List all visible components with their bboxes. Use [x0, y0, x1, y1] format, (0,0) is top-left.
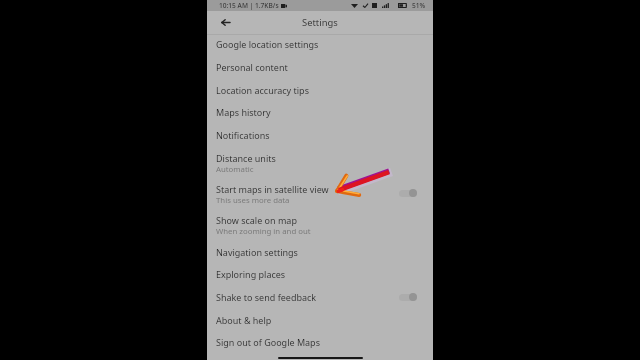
staticText: 51% [412, 1, 426, 10]
button[interactable]: Sign out of Google Maps [207, 330, 433, 353]
button[interactable]: About & help [207, 308, 433, 331]
staticText: About & help [216, 314, 272, 326]
button[interactable]: Notifications [207, 123, 433, 146]
staticText: This uses more data [216, 195, 290, 206]
staticText: Start maps in satellite view [216, 183, 329, 195]
button[interactable]: Show scale on map [207, 208, 433, 239]
button[interactable]: Google location settings [207, 32, 433, 55]
staticText: Location accuracy tips [216, 84, 309, 96]
staticText: Notifications [216, 129, 270, 141]
button[interactable]: Toggle [399, 186, 424, 200]
staticText: Distance units [216, 152, 276, 164]
button[interactable]: Start maps in satellite view [207, 177, 433, 208]
button[interactable]: Personal content [207, 55, 433, 78]
button[interactable]: Shake to send feedback [207, 285, 433, 308]
button[interactable]: Distance units [207, 146, 433, 177]
staticText: Personal content [216, 61, 288, 73]
button[interactable]: Exploring places [207, 262, 433, 285]
staticText: Show scale on map [216, 214, 297, 226]
button[interactable]: Maps history [207, 100, 433, 123]
staticText: Automatic [216, 164, 254, 175]
staticText: Google location settings [216, 38, 319, 50]
staticText: Navigation settings [216, 246, 298, 258]
staticText: Settings [302, 16, 338, 29]
staticText: 10:15 AM | 1.7KB/s [219, 1, 279, 10]
staticText: Sign out of Google Maps [216, 336, 320, 348]
staticText: Exploring places [216, 268, 286, 280]
staticText: When zooming in and out [216, 226, 311, 237]
button[interactable]: Back [216, 13, 234, 31]
staticText: Maps history [216, 106, 271, 118]
button[interactable]: Toggle [399, 290, 424, 304]
button[interactable]: Navigation settings [207, 240, 433, 263]
button[interactable]: Location accuracy tips [207, 78, 433, 101]
staticText: Shake to send feedback [216, 291, 317, 303]
